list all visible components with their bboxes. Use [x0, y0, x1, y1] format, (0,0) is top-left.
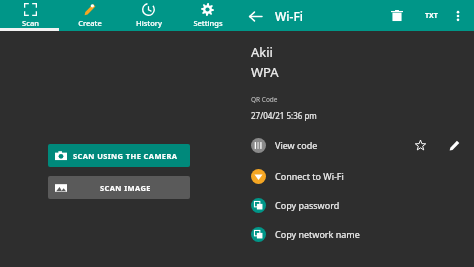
button[interactable]: Edit: [444, 135, 464, 155]
button[interactable]: SCAN IMAGE: [48, 176, 190, 199]
button[interactable]: History: [119, 0, 178, 31]
staticText: Scan: [22, 18, 39, 28]
button[interactable]: Back: [245, 6, 265, 26]
button[interactable]: More options: [448, 6, 468, 26]
button[interactable]: Text: [420, 5, 442, 27]
button[interactable]: Connect to Wi-Fi: [251, 166, 464, 186]
button[interactable]: Scan: [0, 0, 60, 31]
staticText: Settings: [193, 18, 223, 28]
button[interactable]: Copy network name: [251, 224, 464, 244]
button[interactable]: Create: [60, 0, 119, 31]
staticText: SCAN USING THE CAMERA: [73, 151, 178, 161]
staticText: 27/04/21 5:36 pm: [251, 110, 317, 121]
staticText: WPA: [251, 63, 279, 81]
button[interactable]: Copy password: [251, 195, 464, 215]
staticText: Copy password: [275, 199, 340, 211]
staticText: Connect to Wi-Fi: [275, 170, 344, 182]
button[interactable]: Favourite: [410, 135, 430, 155]
staticText: SCAN IMAGE: [100, 183, 151, 193]
staticText: History: [136, 18, 162, 28]
staticText: Copy network name: [275, 228, 360, 240]
staticText: Akii: [251, 43, 273, 61]
staticText: QR Code: [251, 95, 278, 104]
staticText: View code: [275, 139, 318, 151]
button[interactable]: Settings: [178, 0, 237, 31]
button[interactable]: View code: [251, 132, 464, 158]
button[interactable]: SCAN USING THE CAMERA: [48, 144, 190, 167]
staticText: Create: [78, 18, 102, 28]
staticText: TXT: [425, 11, 438, 21]
button[interactable]: Delete: [386, 5, 408, 27]
staticText: Wi-Fi: [275, 8, 303, 24]
